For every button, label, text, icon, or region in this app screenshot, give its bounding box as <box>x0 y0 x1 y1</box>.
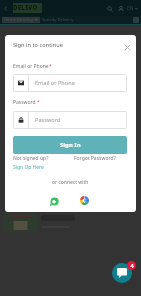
staticText: Forgot Password? <box>74 155 116 162</box>
button[interactable]: Password <box>13 111 127 129</box>
staticText: Home Delivery ▾ <box>4 17 38 23</box>
button[interactable]: Forgot Password? <box>74 155 116 162</box>
staticText: Password <box>35 116 61 124</box>
button[interactable]: Sign In <box>13 136 127 154</box>
staticText: 4 <box>130 262 134 269</box>
staticText: EN <box>127 5 134 12</box>
button[interactable]: Close <box>122 42 133 53</box>
button[interactable]: Back <box>1 4 10 13</box>
staticText: Not signed up? <box>13 155 49 162</box>
staticText: Email or Phone <box>35 79 75 87</box>
button[interactable]: Home Delivery ▾ <box>4 17 38 23</box>
staticText: * <box>49 63 52 70</box>
staticText: Sign Up Here <box>13 164 44 171</box>
button[interactable]: Search <box>105 4 114 13</box>
staticText: or connect with <box>52 179 89 186</box>
button[interactable]: Sign in with WhatsApp <box>49 195 60 206</box>
staticText: Email or Phone <box>13 63 49 70</box>
button[interactable]: Email or Phone <box>13 74 127 92</box>
button[interactable]: Not signed up? <box>13 155 49 171</box>
staticText: DELIVOO <box>13 3 42 13</box>
button[interactable]: Chat <box>112 263 132 283</box>
button[interactable]: Speedy Delivery <box>42 17 74 23</box>
staticText: * <box>37 99 40 106</box>
staticText: Sign In <box>60 141 81 149</box>
staticText: Password <box>13 99 37 106</box>
button[interactable]: Sign in with Google <box>79 195 90 206</box>
button[interactable]: EN <box>127 5 139 12</box>
button[interactable]: Account <box>116 4 125 13</box>
staticText: Sign in to continue <box>13 41 63 49</box>
